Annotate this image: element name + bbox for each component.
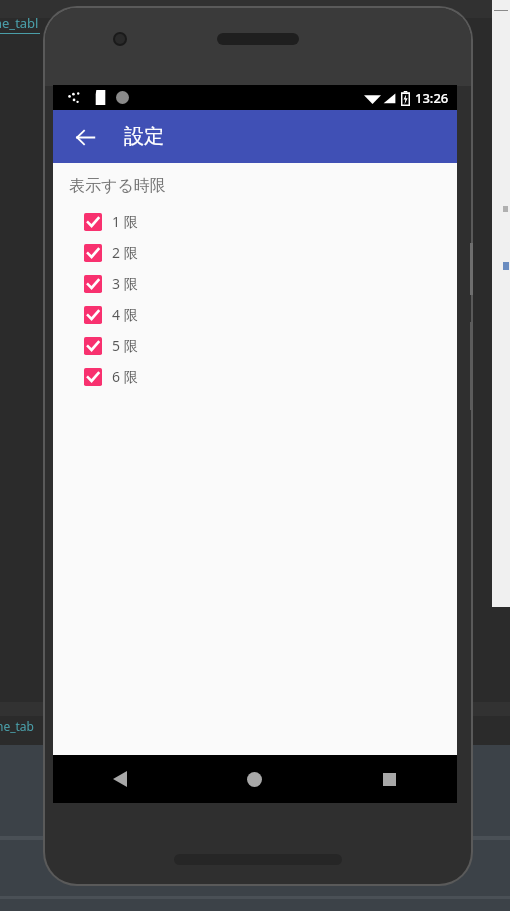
staticText: 設定 [124, 124, 164, 149]
staticText: ne_tab [0, 718, 34, 734]
button[interactable]: 3 限 [53, 268, 457, 299]
staticText: 3 限 [112, 274, 138, 293]
staticText: 5 限 [112, 336, 138, 355]
button[interactable]: Back [63, 115, 107, 159]
button[interactable]: 4 限 [53, 299, 457, 330]
button[interactable]: 6 限 [53, 361, 457, 392]
staticText: 2 限 [112, 243, 138, 262]
staticText: 表示する時限 [69, 176, 166, 196]
staticText: 4 限 [112, 305, 138, 324]
button[interactable]: 5 限 [53, 330, 457, 361]
staticText: 13:26 [415, 89, 449, 107]
staticText: 6 限 [112, 367, 138, 386]
button[interactable]: Home [187, 755, 322, 803]
staticText: ne_tabl [0, 14, 39, 32]
button[interactable]: 2 限 [53, 237, 457, 268]
staticText: 1 限 [112, 212, 138, 231]
button[interactable]: Back [53, 755, 187, 803]
button[interactable]: 1 限 [53, 206, 457, 237]
button[interactable]: Recent apps [322, 755, 457, 803]
